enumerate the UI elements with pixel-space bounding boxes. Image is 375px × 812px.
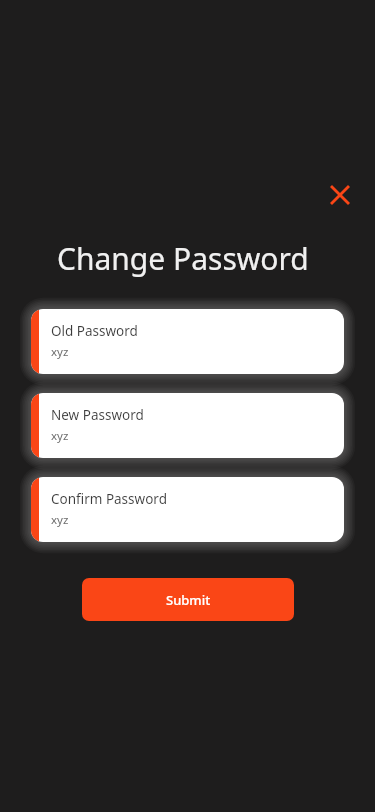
staticText: New Password: [51, 406, 144, 424]
button[interactable]: Confirm Password: [31, 477, 344, 542]
staticText: Change Password: [57, 238, 309, 279]
staticText: xyz: [51, 428, 69, 444]
staticText: Submit: [166, 591, 211, 609]
staticText: xyz: [51, 344, 69, 360]
staticText: xyz: [51, 512, 69, 528]
staticText: Confirm Password: [51, 490, 167, 508]
staticText: Old Password: [51, 322, 138, 340]
button[interactable]: New Password: [31, 393, 344, 458]
button[interactable]: Old Password: [31, 309, 344, 374]
button[interactable]: Close: [320, 175, 360, 215]
button[interactable]: Submit: [82, 578, 294, 621]
